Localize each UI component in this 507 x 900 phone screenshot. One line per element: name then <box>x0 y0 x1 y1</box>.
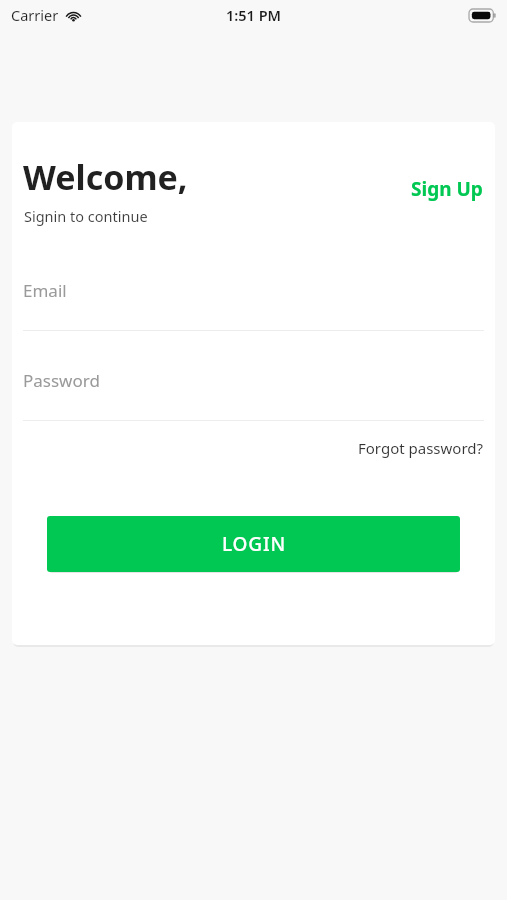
staticText: 1:51 PM <box>226 5 282 25</box>
staticText: Welcome, <box>23 154 188 200</box>
staticText: Password <box>23 369 100 392</box>
staticText: Forgot password? <box>358 438 484 458</box>
staticText: Sign Up <box>411 176 483 202</box>
button[interactable]: Sign Up <box>407 172 487 206</box>
staticText: LOGIN <box>222 531 286 557</box>
staticText: Email <box>23 279 67 302</box>
button[interactable]: Email <box>12 267 495 331</box>
button[interactable]: LOGIN <box>47 516 460 572</box>
staticText: Carrier <box>11 5 59 25</box>
button[interactable]: Password <box>12 357 495 421</box>
staticText: Signin to continue <box>24 206 148 226</box>
button[interactable]: Forgot password? <box>354 434 488 462</box>
